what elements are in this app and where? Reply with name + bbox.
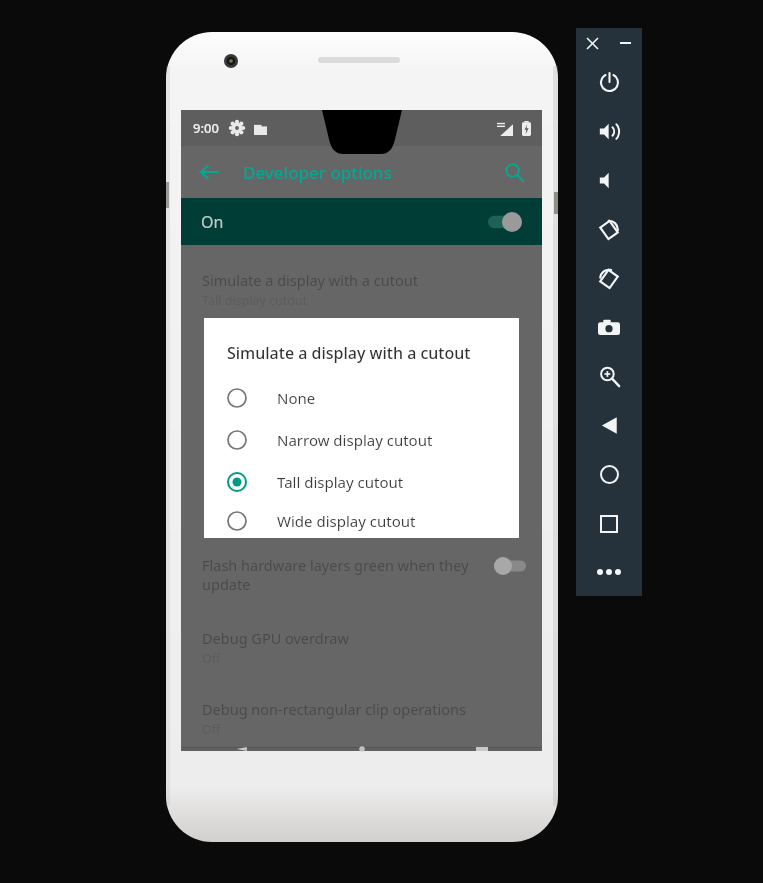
staticText: Wide display cutout [277,511,416,531]
button[interactable]: Home [576,450,642,499]
button[interactable]: Back [576,401,642,450]
staticText: Simulate a display with a cutout [227,342,471,364]
button[interactable]: Volume down [576,156,642,205]
button[interactable]: Recent apps [422,747,542,751]
button[interactable]: Rotate right [576,254,642,303]
button[interactable]: More [576,548,642,596]
staticText: None [277,388,316,408]
staticText: Narrow display cutout [277,430,433,450]
button[interactable]: None [204,377,519,419]
button[interactable]: Back [181,747,302,751]
button[interactable]: Flash hardware layers green when they up… [181,546,542,603]
staticText: On [201,211,224,233]
button[interactable]: Debug non-rectangular clip operations [181,676,542,747]
staticText: Developer options [243,161,392,184]
staticText: Debug non-rectangular clip operations [202,699,466,719]
button[interactable]: Overview [576,499,642,548]
button[interactable]: Home [302,747,422,751]
button[interactable]: Search [494,152,534,192]
button[interactable]: On [181,198,542,245]
button[interactable]: Narrow display cutout [204,419,519,461]
staticText: Simulate a display with a cutout [202,270,418,290]
staticText: 9:00 [193,119,219,137]
button[interactable]: Debug GPU overdraw [181,603,542,676]
button[interactable]: Power [576,58,642,107]
button[interactable]: Volume up [576,107,642,156]
staticText: Off [202,650,221,667]
button[interactable]: Minimize [609,28,642,58]
button[interactable]: Take screenshot [576,303,642,352]
button[interactable]: Simulate a display with a cutout [181,245,542,318]
staticText: Tall display cutout [277,472,404,492]
button[interactable]: Tall display cutout [204,461,519,503]
staticText: Debug GPU overdraw [202,628,349,648]
button[interactable]: Navigate up [189,152,229,192]
button[interactable]: Close [576,28,609,58]
button[interactable]: Wide display cutout [204,503,519,538]
button[interactable]: Rotate left [576,205,642,254]
staticText: Flash hardware layers green when they up… [202,555,469,594]
other: Settings [230,121,244,135]
staticText: Off [202,721,221,738]
button[interactable]: Zoom [576,352,642,401]
